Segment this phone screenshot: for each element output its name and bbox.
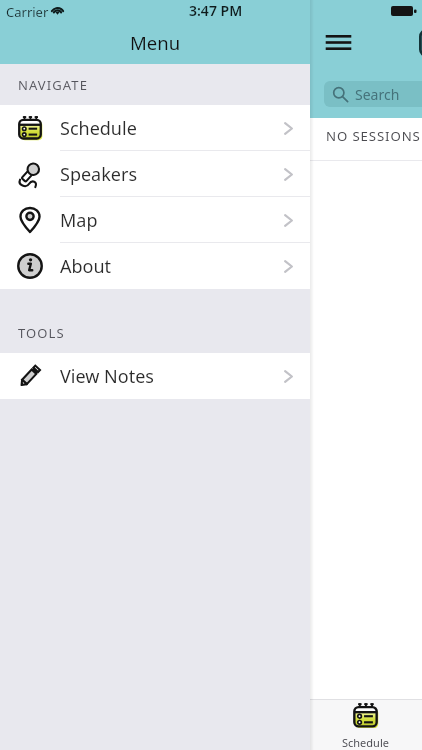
staticText: 3:47 PM <box>189 1 243 20</box>
button[interactable]: Menu <box>316 20 360 64</box>
staticText: Carrier <box>6 3 49 21</box>
button[interactable]: About <box>0 243 310 289</box>
staticText: Search <box>355 85 400 104</box>
staticText: Schedule <box>342 735 389 750</box>
button[interactable]: Today <box>403 22 422 66</box>
staticText: Speakers <box>60 162 138 187</box>
button[interactable]: Map <box>0 197 310 243</box>
staticText: About <box>60 254 112 279</box>
staticText: NO SESSIONS <box>326 127 421 145</box>
button[interactable]: Search <box>324 81 422 107</box>
button[interactable]: Schedule <box>330 700 400 750</box>
button[interactable]: Schedule <box>0 105 310 151</box>
button[interactable]: View Notes <box>0 353 310 399</box>
staticText: NAVIGATE <box>18 76 88 94</box>
staticText: Schedule <box>60 116 137 141</box>
staticText: TOOLS <box>18 324 65 342</box>
button[interactable]: Speakers <box>0 151 310 197</box>
staticText: Map <box>60 208 98 233</box>
staticText: Menu <box>130 30 181 55</box>
staticText: View Notes <box>60 364 154 389</box>
